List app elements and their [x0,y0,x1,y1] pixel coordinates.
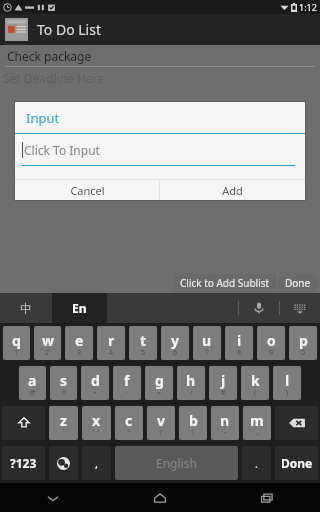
staticText: x [92,411,101,430]
staticText: Input [26,109,60,127]
staticText: 3 [77,348,82,358]
staticText: + [93,388,98,398]
staticText: = [157,388,162,398]
button[interactable]: Done [279,274,317,292]
button[interactable]: Add [160,180,305,200]
button[interactable]: g [145,366,173,400]
staticText: ! [192,428,194,438]
staticText: m [250,411,264,430]
button[interactable]: s [50,366,77,400]
staticText: k [251,371,260,390]
button[interactable]: English [115,446,238,480]
button[interactable]: r [97,326,125,360]
button[interactable]: f [113,366,141,400]
button[interactable]: h [177,366,205,400]
button[interactable]: , [82,446,111,480]
staticText: p [299,331,308,350]
staticText: e [75,331,84,350]
button[interactable]: v [147,406,175,440]
staticText: En [72,300,87,316]
staticText: 0 [301,348,306,358]
staticText: w [42,331,54,350]
staticText: Add [222,183,243,198]
staticText: u [202,331,212,350]
button[interactable]: n [211,406,239,440]
button[interactable]: Check package [0,45,320,66]
staticText: Check package [7,48,92,64]
staticText: r [108,331,115,350]
button[interactable]: o [257,326,285,360]
button[interactable]: m [243,406,271,440]
staticText: o [267,331,276,350]
staticText: 5 [141,348,146,358]
staticText: 9 [269,348,274,358]
button[interactable]: w [34,326,61,360]
staticText: q [12,331,21,350]
button[interactable]: Recent apps [213,483,320,512]
staticText: Click To Input [24,142,100,158]
button[interactable]: u [193,326,221,360]
button[interactable]: t [129,326,157,360]
button[interactable]: p [289,326,317,360]
staticText: # [221,388,226,398]
staticText: i [237,331,242,350]
staticText: 中 [20,301,32,316]
button[interactable]: j [209,366,237,400]
button[interactable]: Back [0,483,106,512]
staticText: ) [286,388,289,398]
button[interactable]: c [115,406,143,440]
staticText: , [95,456,98,471]
staticText: Set Deadline Here [3,70,105,86]
button[interactable]: i [225,326,253,360]
button[interactable]: y [161,326,189,360]
staticText: To Do List [37,20,101,39]
staticText: : [96,428,98,438]
staticText: Done [285,276,311,290]
staticText: " [128,428,131,438]
button[interactable]: Done [275,446,318,480]
button[interactable]: e [65,326,93,360]
button[interactable]: Cancel [15,180,159,200]
staticText: Done [281,455,313,471]
button[interactable]: En [52,293,107,323]
button[interactable]: Shift [2,406,45,440]
staticText: l [285,371,290,390]
button[interactable]: k [241,366,269,400]
staticText: 1:12 [299,1,317,13]
button[interactable]: . [242,446,271,480]
button[interactable]: x [82,406,111,440]
staticText: s [60,371,68,390]
staticText: n [220,411,230,430]
staticText: Cancel [70,183,105,198]
staticText: b [189,411,198,430]
staticText: y [171,331,179,350]
staticText: d [91,371,100,390]
button[interactable]: Backspace [275,406,318,440]
staticText: g [155,371,164,390]
staticText: * [62,388,66,398]
staticText: 7 [205,348,210,358]
staticText: f [124,371,130,390]
button[interactable]: Voice input [239,293,279,323]
button[interactable]: q [3,326,30,360]
staticText: ?123 [10,455,37,471]
staticText: 6 [173,348,178,358]
button[interactable]: l [273,366,301,400]
button[interactable]: Keyboard settings [280,293,320,323]
staticText: t [140,331,147,350]
button[interactable]: a [19,366,46,400]
staticText: ... [254,428,260,438]
staticText: · [126,388,128,398]
button[interactable]: d [81,366,109,400]
staticText: j [221,371,226,390]
button[interactable]: ?123 [2,446,45,480]
button[interactable]: Change language [49,446,78,480]
button[interactable]: Chinese input [0,293,52,323]
button[interactable]: z [49,406,78,440]
button[interactable]: b [179,406,207,440]
button[interactable]: Click to Add Sublist [174,274,276,292]
staticText: ~ [223,428,228,438]
staticText: @ [29,388,36,398]
button[interactable]: Home [106,483,213,512]
